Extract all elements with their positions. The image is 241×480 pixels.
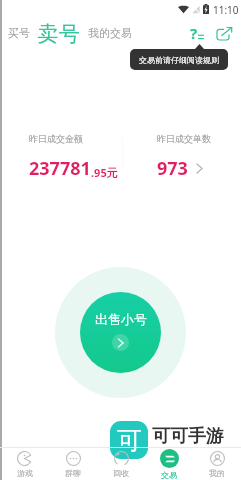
staticText: 交易前请仔细阅读规则 — [139, 55, 219, 65]
staticText: 交易 — [161, 470, 177, 480]
staticText: 我的交易 — [88, 26, 132, 40]
button[interactable]: 我的 — [193, 448, 241, 480]
button[interactable]: 游戏 — [0, 448, 49, 480]
staticText: 昨日成交金额 — [29, 133, 83, 144]
staticText: 群聊 — [65, 468, 81, 478]
button[interactable]: 帮助规则 — [190, 21, 214, 45]
button[interactable]: 出售小号 — [80, 292, 161, 373]
button[interactable]: 交易前请仔细阅读规则 — [130, 49, 228, 70]
staticText: 回收 — [113, 468, 129, 478]
staticText: .95元 — [91, 165, 118, 180]
staticText: 昨日成交单数 — [157, 133, 211, 144]
button[interactable]: 交易 — [145, 448, 193, 480]
staticText: 237781 — [29, 156, 91, 181]
staticText: 卖号 — [37, 21, 80, 45]
button[interactable]: 昨日成交金额 — [29, 133, 139, 181]
staticText: 可可手游 — [152, 425, 224, 448]
button[interactable]: 买号 — [8, 21, 30, 45]
staticText: 973 — [157, 156, 188, 181]
staticText: 游戏 — [17, 468, 33, 478]
staticText: 买号 — [8, 26, 30, 40]
staticText: 出售小号 — [95, 311, 147, 327]
staticText: ? — [190, 23, 198, 43]
staticText: 我的 — [209, 468, 225, 478]
button[interactable]: 卖号 — [37, 21, 80, 45]
button[interactable]: 群聊 — [49, 448, 97, 480]
button[interactable]: 我的交易 — [88, 21, 132, 45]
button[interactable]: 回收 — [97, 448, 145, 480]
button[interactable]: 分享 — [213, 21, 235, 45]
button[interactable]: 昨日成交单数 — [157, 133, 237, 181]
staticText: 可 — [117, 425, 142, 456]
staticText: 11:10 — [213, 3, 239, 15]
